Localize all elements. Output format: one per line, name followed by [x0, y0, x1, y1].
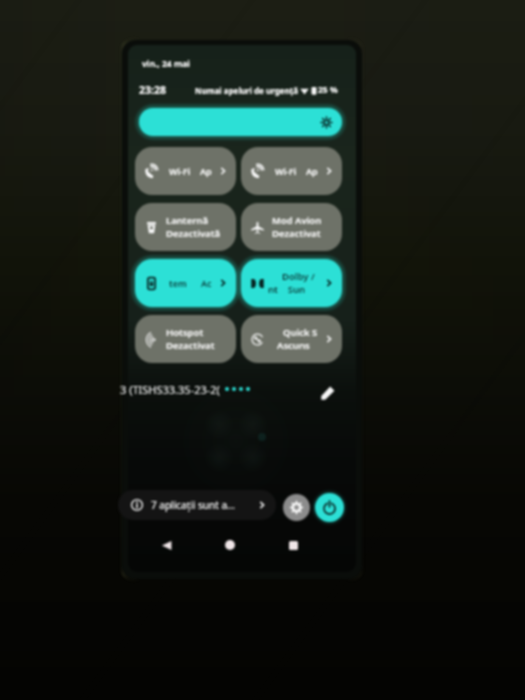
button[interactable]: Hotspot	[135, 315, 236, 363]
staticText: Dezactivat	[166, 339, 215, 352]
staticText: 7 aplicații sunt a...	[151, 498, 236, 512]
button[interactable]: Back	[145, 534, 187, 556]
staticText: 3 (TISHS33.35-23-2(	[120, 382, 220, 397]
staticText: 25 %	[318, 84, 338, 96]
staticText: Mod Avion	[272, 214, 322, 227]
staticText: tem	[169, 277, 187, 289]
button[interactable]: Lanternă	[135, 203, 236, 251]
staticText: Dezactivat	[272, 227, 321, 240]
button[interactable]: Power	[315, 493, 344, 522]
button[interactable]: Recents	[272, 534, 314, 556]
staticText: Dolby /	[282, 270, 315, 283]
staticText: Ascuns	[277, 339, 310, 352]
button[interactable]: Brightness	[139, 108, 342, 136]
button[interactable]: Wi-Fi	[241, 147, 342, 195]
button[interactable]: tem	[135, 259, 236, 307]
staticText: Hotspot	[166, 326, 204, 339]
staticText: Wi-Fi	[275, 165, 297, 177]
staticText: vin., 24 mai	[142, 58, 190, 70]
button[interactable]: Quick S	[241, 315, 342, 363]
staticText: Ap	[306, 165, 318, 177]
button[interactable]: Dolby /	[241, 259, 342, 307]
staticText: Ac	[201, 277, 212, 289]
button[interactable]: Mod Avion	[241, 203, 342, 251]
staticText: Lanternă	[166, 214, 208, 227]
button[interactable]: Settings	[283, 494, 310, 521]
staticText: Numai apeluri de urgență	[195, 85, 298, 96]
staticText: Quick S	[283, 326, 318, 339]
staticText: Ap	[200, 165, 212, 177]
button[interactable]: 7 aplicații sunt a...	[118, 490, 276, 520]
button[interactable]: Wi-Fi	[135, 147, 236, 195]
staticText: Dezactivată	[166, 227, 221, 240]
button[interactable]: Edit tiles	[318, 383, 338, 403]
staticText: Wi-Fi	[169, 165, 191, 177]
staticText: 23:28	[139, 83, 166, 97]
button[interactable]: Home	[209, 534, 251, 556]
staticText: nt Sun	[268, 283, 306, 296]
